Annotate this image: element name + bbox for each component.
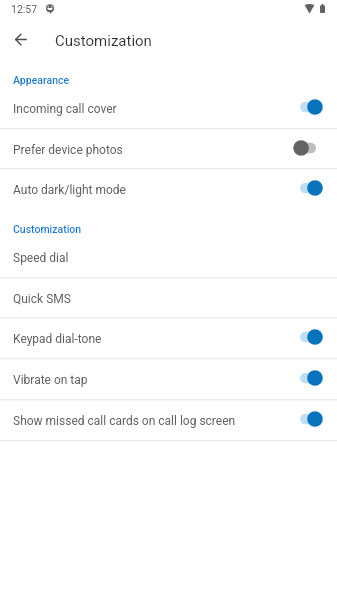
button[interactable]: Speed dial: [0, 237, 337, 277]
staticText: Vibrate on tap: [13, 373, 300, 387]
button[interactable]: Quick SMS: [0, 278, 337, 317]
button[interactable]: Vibrate on tap: [0, 359, 337, 399]
button[interactable]: Back: [6, 24, 36, 54]
staticText: 12:57: [11, 3, 38, 15]
staticText: Speed dial: [13, 251, 323, 265]
button[interactable]: Show missed call cards on call log scree…: [0, 400, 337, 440]
staticText: Show missed call cards on call log scree…: [13, 414, 300, 428]
button[interactable]: Prefer device photos: [0, 129, 337, 168]
button[interactable]: Keypad dial-tone: [0, 318, 337, 358]
staticText: Prefer device photos: [13, 143, 300, 157]
staticText: Keypad dial-tone: [13, 332, 300, 346]
staticText: Auto dark/light mode: [13, 183, 300, 197]
staticText: Customization: [13, 223, 82, 235]
button[interactable]: Incoming call cover: [0, 88, 337, 128]
button[interactable]: Auto dark/light mode: [0, 169, 337, 209]
staticText: Incoming call cover: [13, 102, 300, 116]
staticText: Appearance: [13, 74, 70, 86]
staticText: Quick SMS: [13, 292, 323, 306]
staticText: Customization: [55, 32, 152, 50]
